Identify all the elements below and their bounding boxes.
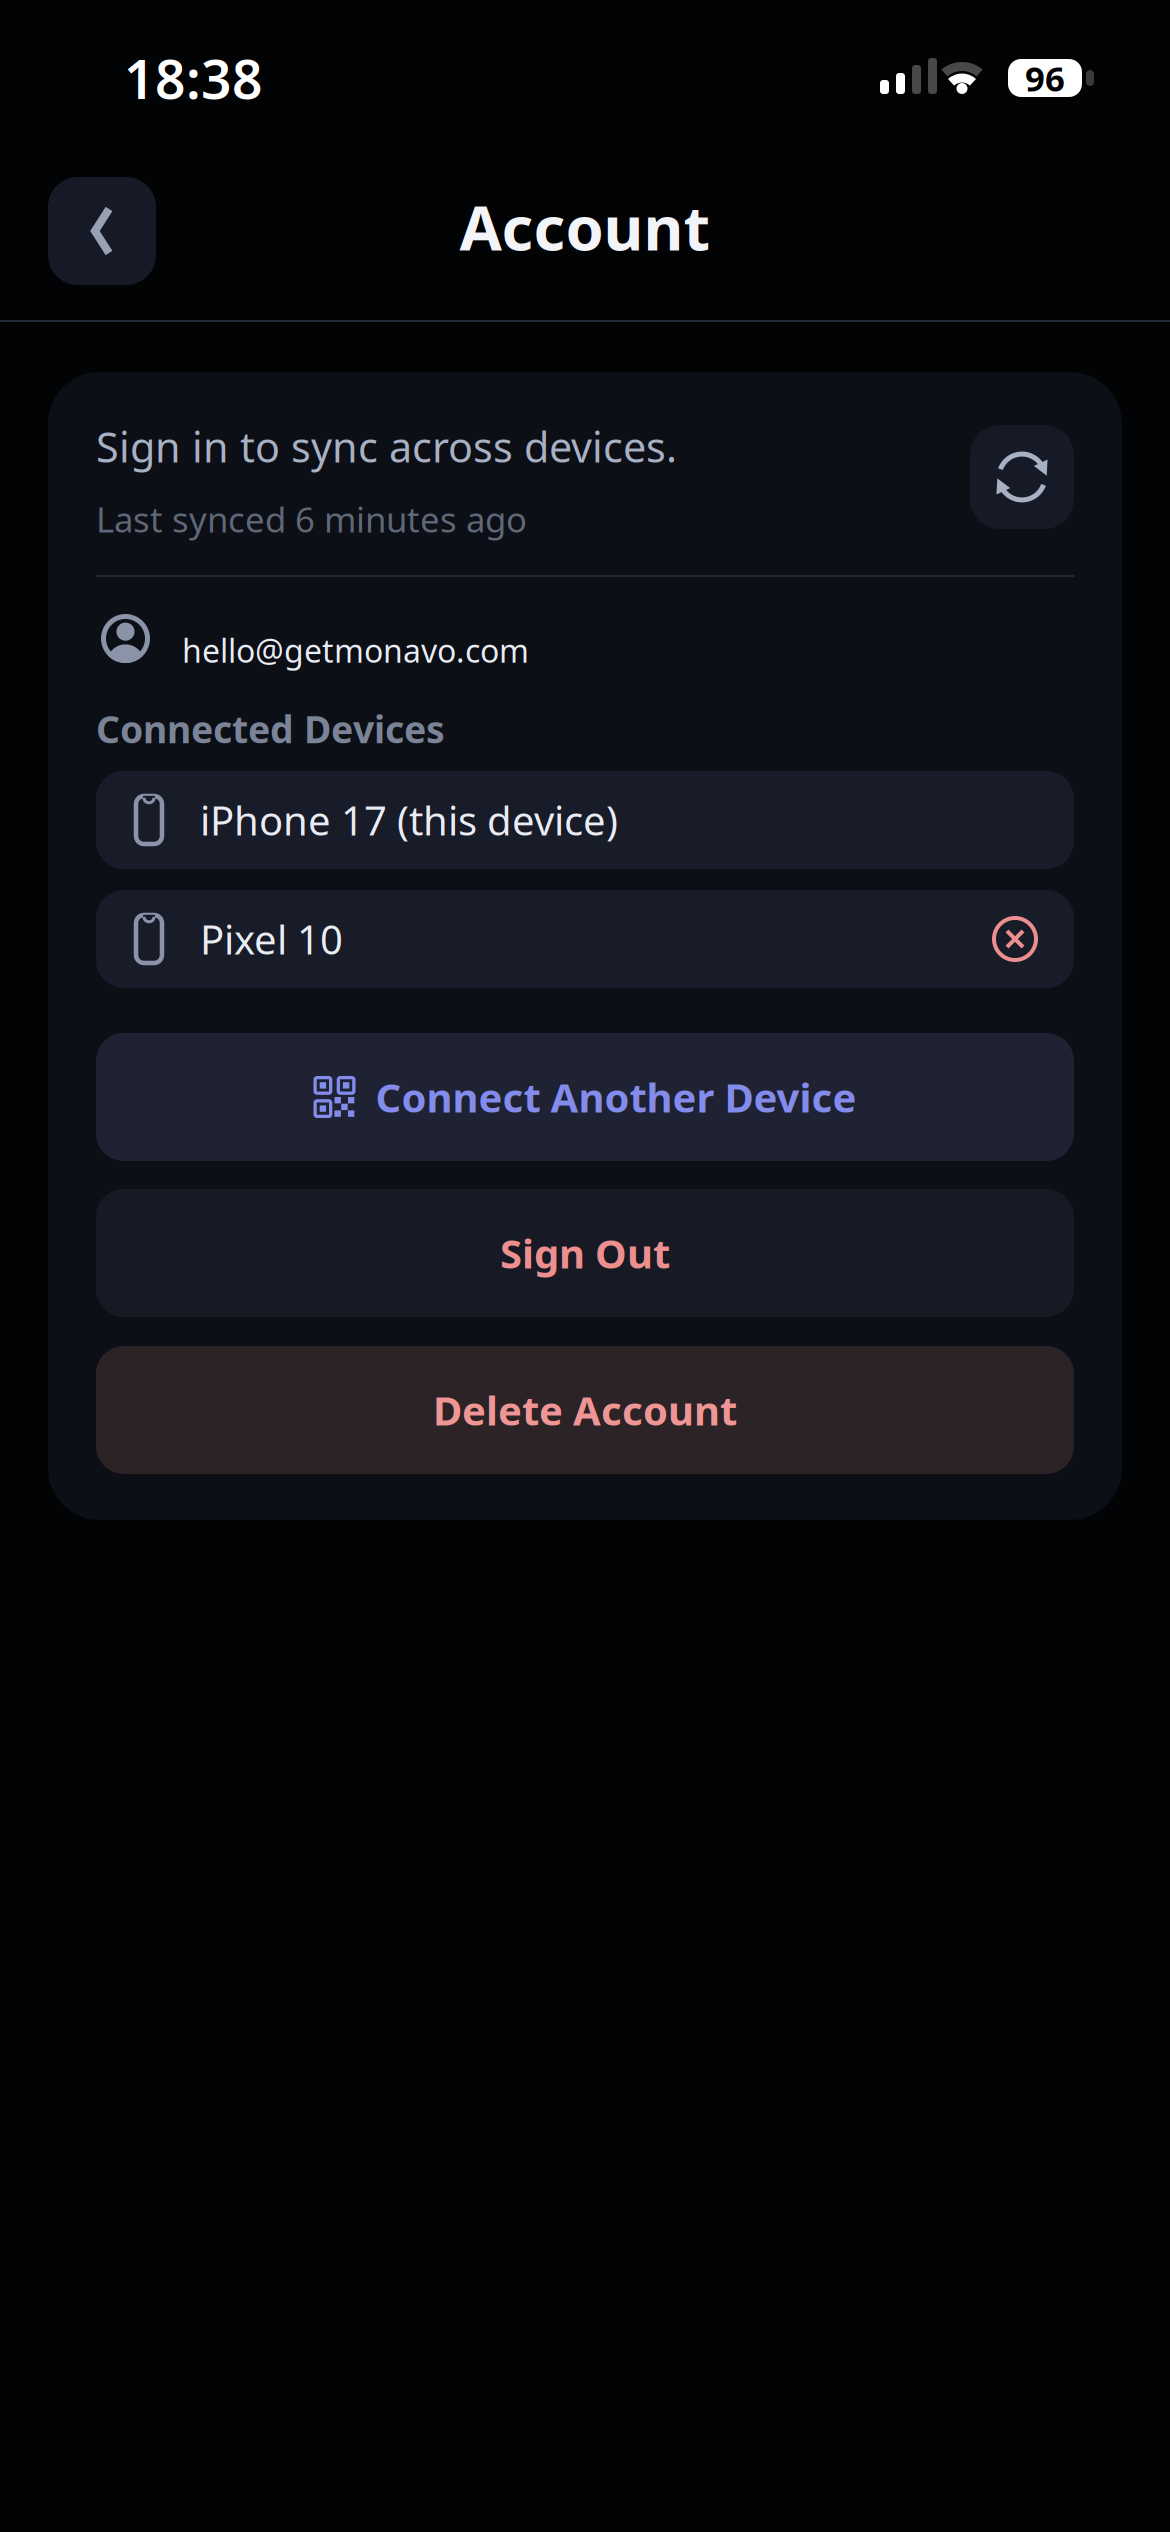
staticText: Account [459,186,710,267]
button[interactable]: Back [48,177,156,285]
button[interactable]: Sync now [970,425,1074,529]
staticText: 96 [1025,55,1065,101]
staticText: Sign Out [500,1226,670,1279]
button[interactable]: Delete Account [96,1346,1074,1474]
staticText: Sign in to sync across devices. [96,419,677,474]
staticText: 18:38 [124,43,263,114]
button[interactable]: Remove Pixel 10 [986,910,1044,968]
staticText: Connected Devices [96,704,445,754]
button[interactable]: Sign Out [96,1189,1074,1317]
button[interactable]: Connect Another Device [96,1033,1074,1161]
staticText: Last synced 6 minutes ago [96,496,527,542]
staticText: iPhone 17 (this device) [200,793,618,846]
staticText: Connect Another Device [375,1070,856,1123]
staticText: Delete Account [433,1383,737,1436]
staticText: hello@getmonavo.com [182,629,529,671]
staticText: Pixel 10 [200,912,343,965]
